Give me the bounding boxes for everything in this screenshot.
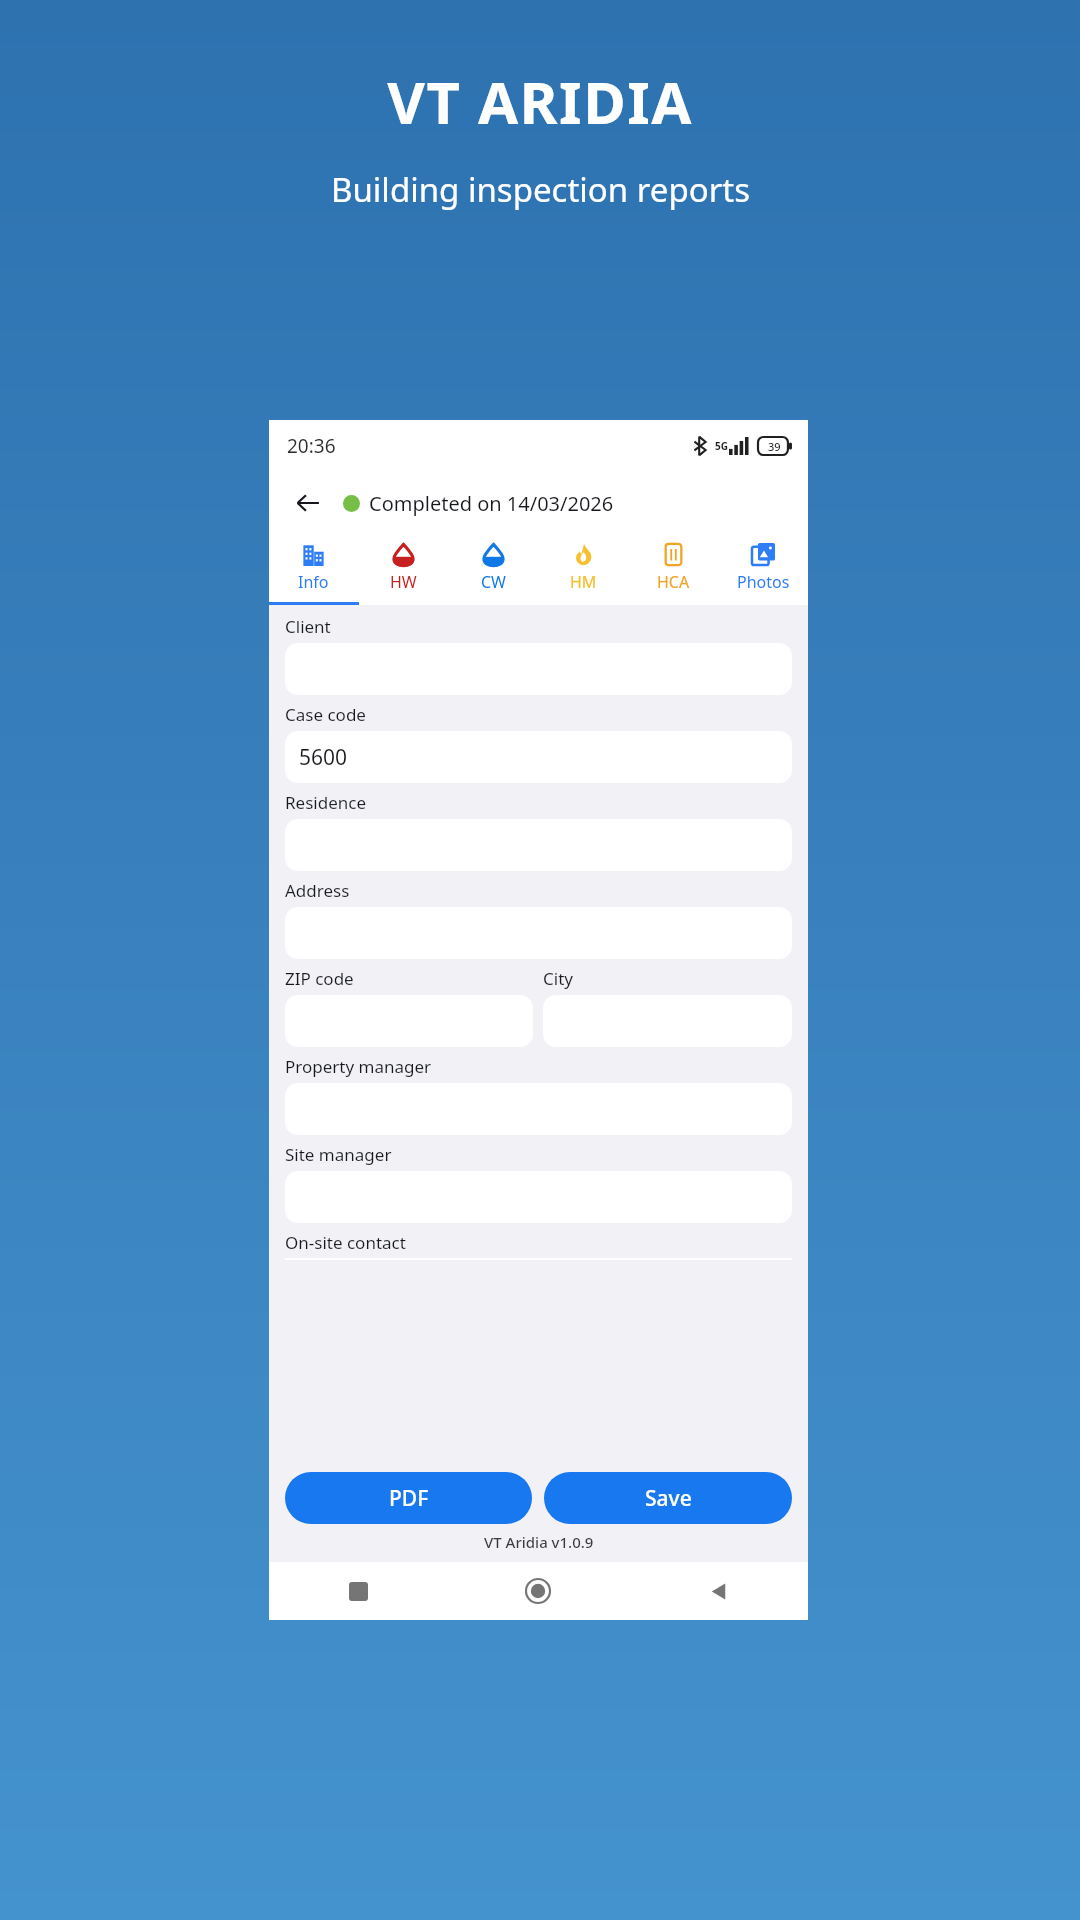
staticText: VT ARIDIA (387, 62, 693, 141)
button[interactable]: Save (544, 1472, 792, 1524)
staticText: 5G (715, 439, 728, 453)
staticText: Info (298, 571, 329, 593)
staticText: 39 (768, 439, 781, 454)
staticText: Site manager (285, 1143, 392, 1166)
staticText: ZIP code (285, 967, 354, 990)
staticText: Completed on 14/03/2026 (369, 490, 614, 517)
staticText: Address (285, 879, 350, 902)
staticText: VT Aridia v1.0.9 (484, 1532, 594, 1552)
staticText: Photos (737, 571, 790, 593)
button[interactable]: PDF (285, 1472, 532, 1524)
staticText: 20:36 (287, 433, 336, 459)
button[interactable]: Photos (718, 534, 808, 602)
staticText: HCA (657, 571, 690, 593)
button[interactable]: Home (448, 1562, 628, 1620)
staticText: Residence (285, 791, 366, 814)
button[interactable]: Recent apps (269, 1562, 448, 1620)
button[interactable]: 5600 (285, 731, 792, 783)
staticText: City (543, 967, 573, 990)
button[interactable]: HW (358, 534, 448, 602)
staticText: Property manager (285, 1055, 432, 1078)
staticText: Building inspection reports (331, 167, 750, 212)
staticText: Client (285, 615, 331, 638)
button[interactable]: Back (628, 1562, 808, 1620)
staticText: Save (645, 1484, 692, 1513)
button[interactable]: Info (269, 534, 358, 602)
staticText: HW (390, 571, 417, 593)
staticText: HM (570, 571, 597, 593)
button[interactable]: HCA (628, 534, 718, 602)
staticText: On-site contact (285, 1231, 406, 1254)
button[interactable]: Back (287, 482, 329, 524)
staticText: CW (481, 571, 506, 593)
staticText: PDF (389, 1484, 429, 1513)
staticText: 5600 (299, 743, 348, 772)
button[interactable]: CW (448, 534, 538, 602)
button[interactable]: HM (538, 534, 628, 602)
staticText: Case code (285, 703, 366, 726)
